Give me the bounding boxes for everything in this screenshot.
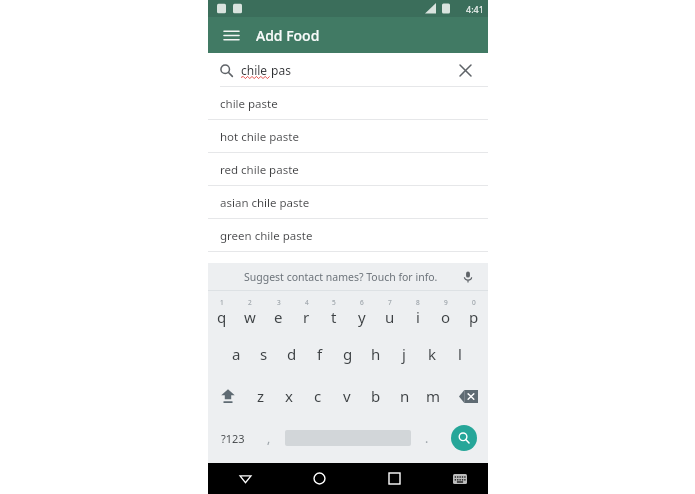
staticText: 2 [248, 298, 252, 307]
button[interactable]: . [415, 417, 439, 459]
button[interactable]: Search [451, 425, 477, 451]
staticText: q [217, 307, 227, 327]
button[interactable]: 2 [236, 291, 264, 333]
button[interactable]: Voice input [458, 267, 478, 287]
button[interactable]: 3 [264, 291, 292, 333]
button[interactable]: z [247, 375, 275, 417]
button[interactable]: hot chile paste [208, 120, 488, 153]
button[interactable]: k [418, 333, 446, 375]
staticText: asian chile paste [220, 195, 310, 211]
button[interactable]: Switch keyboard [432, 463, 488, 494]
button[interactable]: 4 [292, 291, 320, 333]
staticText: i [416, 307, 420, 327]
staticText: v [343, 386, 351, 406]
staticText: 6 [360, 298, 364, 307]
button[interactable]: Backspace [448, 375, 488, 417]
button[interactable]: 9 [432, 291, 460, 333]
staticText: 4:41 [466, 3, 484, 15]
button[interactable]: red chile paste [208, 153, 488, 186]
button[interactable]: Open navigation menu [218, 22, 244, 48]
button[interactable]: j [390, 333, 418, 375]
staticText: t [331, 307, 337, 327]
button[interactable]: 0 [460, 291, 488, 333]
staticText: red chile paste [220, 162, 299, 178]
button[interactable]: l [446, 333, 474, 375]
other: Search [220, 64, 233, 77]
staticText: w [244, 307, 256, 327]
staticText: c [314, 386, 322, 406]
button[interactable]: c [303, 375, 332, 417]
staticText: Suggest contact names? Touch for info. [244, 270, 438, 284]
button[interactable]: Home [282, 463, 357, 494]
button[interactable]: f [306, 333, 334, 375]
button[interactable]: Clear search [454, 59, 476, 81]
staticText: Add Food [256, 26, 320, 45]
button[interactable]: n [390, 375, 419, 417]
button[interactable]: Back [208, 463, 282, 494]
button[interactable]: 1 [208, 291, 236, 333]
button[interactable]: Shift [208, 375, 247, 417]
staticText: e [274, 307, 283, 327]
staticText: z [257, 386, 265, 406]
button[interactable]: asian chile paste [208, 186, 488, 219]
button[interactable]: s [250, 333, 278, 375]
button[interactable]: 5 [320, 291, 348, 333]
staticText: 5 [332, 298, 336, 307]
button[interactable]: m [419, 375, 448, 417]
staticText: ?123 [221, 431, 245, 446]
staticText: g [343, 344, 353, 364]
staticText: d [287, 344, 297, 364]
button[interactable]: v [332, 375, 361, 417]
staticText: f [317, 344, 323, 364]
staticText: r [303, 307, 310, 327]
staticText: a [232, 344, 241, 364]
staticText: l [458, 344, 462, 364]
staticText: p [469, 307, 479, 327]
button[interactable]: a [222, 333, 250, 375]
button[interactable]: h [362, 333, 390, 375]
staticText: green chile paste [220, 228, 313, 244]
staticText: x [285, 386, 293, 406]
button[interactable]: 7 [376, 291, 404, 333]
staticText: b [371, 386, 381, 406]
staticText: k [428, 344, 437, 364]
button[interactable]: x [275, 375, 303, 417]
staticText: 8 [416, 298, 420, 307]
staticText: chile [241, 62, 268, 78]
staticText: . [425, 430, 429, 446]
staticText: 0 [472, 298, 476, 307]
button[interactable]: b [361, 375, 390, 417]
button[interactable]: , [257, 417, 281, 459]
staticText: h [371, 344, 381, 364]
staticText: n [400, 386, 410, 406]
staticText: , [267, 430, 271, 446]
button[interactable]: ?123 [208, 417, 257, 459]
staticText: o [441, 307, 451, 327]
button[interactable]: d [278, 333, 306, 375]
staticText: m [426, 386, 441, 406]
staticText: chile paste [220, 96, 278, 112]
button[interactable]: Search [208, 53, 488, 87]
staticText: j [402, 344, 406, 364]
staticText: u [385, 307, 395, 327]
staticText: pas [268, 62, 291, 78]
staticText: y [358, 307, 366, 327]
staticText: 1 [220, 298, 224, 307]
staticText: 7 [388, 298, 392, 307]
staticText: s [260, 344, 268, 364]
button[interactable]: Recent apps [357, 463, 432, 494]
button[interactable]: 6 [348, 291, 376, 333]
staticText: 4 [305, 298, 309, 307]
staticText: 3 [277, 298, 281, 307]
button[interactable]: 8 [404, 291, 432, 333]
staticText: hot chile paste [220, 129, 299, 145]
button[interactable]: g [334, 333, 362, 375]
button[interactable]: green chile paste [208, 219, 488, 252]
staticText: 9 [444, 298, 448, 307]
button[interactable]: chile paste [208, 87, 488, 120]
button[interactable]: Suggest contact names? Touch for info. [208, 263, 488, 291]
